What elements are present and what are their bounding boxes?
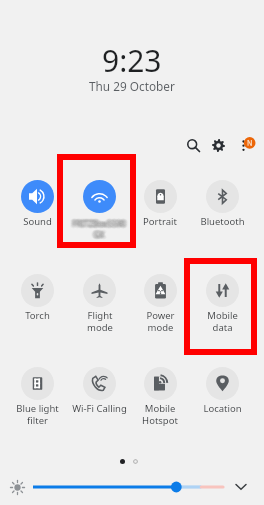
staticText: FRITZBox5590 GX: [70, 220, 130, 242]
staticText: FRITZBox5590 GX: [69, 217, 129, 239]
staticText: FRITZBox5590 GX: [69, 219, 129, 241]
staticText: FRITZBox5590 GX: [69, 220, 129, 242]
staticText: FRITZBox5590 GX: [71, 218, 131, 240]
staticText: Power mode: [146, 309, 175, 333]
staticText: Portrait: [143, 215, 177, 228]
staticText: Flight mode: [87, 309, 113, 333]
button[interactable]: FRITZBox5590 GX: [69, 180, 129, 243]
staticText: FRITZBox5590 GX: [66, 218, 126, 240]
button[interactable]: Bluetooth: [192, 180, 252, 243]
button[interactable]: Location: [192, 367, 252, 430]
button[interactable]: More options: [234, 131, 260, 157]
staticText: Bluetooth: [200, 215, 245, 228]
staticText: Mobile data: [207, 309, 238, 333]
staticText: FRITZBox5590 GX: [70, 217, 130, 239]
staticText: Thu 29 October: [89, 78, 175, 94]
staticText: FRITZBox5590 GX: [72, 219, 132, 241]
staticText: FRITZBox5590 GX: [66, 217, 126, 239]
staticText: FRITZBox5590 GX: [71, 219, 131, 241]
button[interactable]: Mobile Hotspot: [130, 367, 190, 430]
button[interactable]: Torch: [7, 274, 67, 337]
button[interactable]: Mobile data: [192, 274, 252, 337]
staticText: Blue light filter: [16, 402, 59, 426]
button[interactable]: Blue light filter: [7, 367, 67, 430]
button[interactable]: Settings: [206, 133, 231, 158]
staticText: Wi-Fi Calling: [72, 402, 127, 415]
button[interactable]: Power mode: [130, 274, 190, 337]
staticText: FRITZBox5590 GX: [72, 218, 132, 240]
button[interactable]: Brightness slider: [33, 479, 225, 495]
staticText: Sound: [23, 215, 52, 228]
button[interactable]: Brightness: [8, 478, 26, 496]
staticText: FRITZBox5590 GX: [68, 218, 128, 240]
staticText: FRITZBox5590 GX: [68, 216, 128, 238]
staticText: FRITZBox5590 GX: [68, 219, 128, 241]
staticText: FRITZBox5590 GX: [66, 219, 126, 241]
staticText: FRITZBox5590 GX: [69, 218, 129, 240]
button[interactable]: Expand: [231, 477, 251, 497]
staticText: Torch: [25, 309, 50, 322]
button[interactable]: Flight mode: [69, 274, 129, 337]
staticText: FRITZBox5590 GX: [71, 217, 131, 239]
staticText: FRITZBox5590 GX: [70, 219, 130, 241]
staticText: FRITZBox5590 GX: [72, 217, 132, 239]
staticText: FRITZBox5590 GX: [67, 219, 127, 241]
staticText: Location: [203, 402, 242, 415]
button[interactable]: Sound: [7, 180, 67, 243]
staticText: 9:23: [102, 40, 162, 81]
staticText: FRITZBox5590 GX: [67, 218, 127, 240]
button[interactable]: Wi-Fi Calling: [69, 367, 129, 430]
staticText: FRITZBox5590 GX: [69, 216, 129, 238]
staticText: FRITZBox5590 GX: [67, 217, 127, 239]
staticText: Mobile Hotspot: [142, 402, 178, 426]
staticText: FRITZBox5590 GX: [70, 218, 130, 240]
button[interactable]: Search: [181, 133, 206, 158]
staticText: FRITZBox5590 GX: [68, 217, 128, 239]
button[interactable]: Portrait: [130, 180, 190, 243]
staticText: FRITZBox5590 GX: [68, 220, 128, 242]
staticText: FRITZBox5590 GX: [70, 216, 130, 238]
